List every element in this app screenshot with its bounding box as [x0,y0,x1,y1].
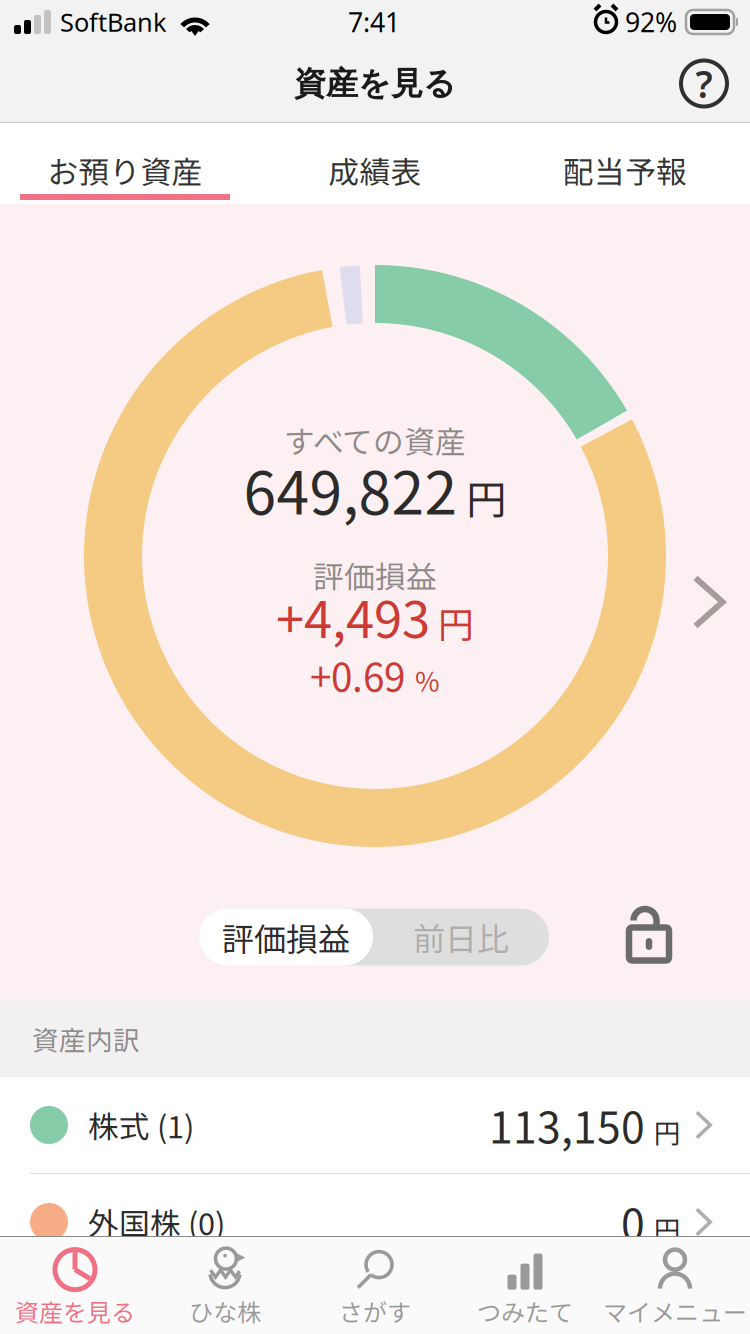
button[interactable]: Lock [610,906,688,968]
staticText: 円 [654,1113,681,1151]
staticText: 7:41 [348,4,400,40]
staticText: 資産内訳 [32,1019,140,1058]
staticText: 評価損益 [313,553,437,597]
staticText: お預り資産 [47,148,202,192]
staticText: ひな株 [189,1294,261,1328]
button[interactable]: お預り資産 [0,123,250,204]
staticText: 円 [654,1210,681,1248]
staticText: 649,822 [243,446,457,531]
staticText: 円 [438,596,474,648]
staticText: 92% [625,4,677,40]
staticText: % [415,661,440,699]
staticText: 株式 (1) [88,1103,194,1147]
button[interactable]: 前日比 [373,908,549,965]
button[interactable]: Help [658,44,750,123]
staticText: さがす [339,1294,411,1328]
staticText: ? [695,59,712,108]
button[interactable]: Next [678,571,740,633]
staticText: 資産を見る [294,63,456,104]
staticText: すべての資産 [284,418,466,462]
button[interactable]: 株式 (1) [0,1077,750,1173]
staticText: 配当予報 [563,148,687,192]
staticText: マイメニュー [603,1294,747,1328]
staticText: つみたて [477,1294,573,1328]
staticText: 113,150 [489,1094,645,1156]
button[interactable]: さがす [300,1236,450,1334]
button[interactable]: ひな株 [150,1236,300,1334]
button[interactable]: 資産を見る [0,1236,150,1334]
button[interactable]: 成績表 [250,123,500,204]
button[interactable]: マイメニュー [600,1236,750,1334]
staticText: +4,493 [276,579,430,653]
button[interactable]: つみたて [450,1236,600,1334]
staticText: +0.69 [310,647,405,703]
button[interactable]: 配当予報 [500,123,750,204]
staticText: 円 [466,468,506,526]
staticText: 資産を見る [15,1294,135,1328]
staticText: 0 [621,1191,645,1253]
staticText: 外国株 (0) [88,1200,225,1244]
staticText: SoftBank [60,5,167,39]
button[interactable]: 評価損益 [199,908,373,965]
staticText: 前日比 [413,914,509,960]
staticText: 評価損益 [222,914,350,960]
staticText: 成績表 [328,148,421,192]
button[interactable]: 外国株 (0) [0,1174,750,1270]
